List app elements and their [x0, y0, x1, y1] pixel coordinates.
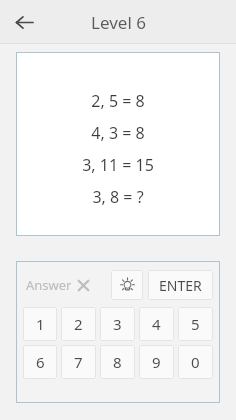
button[interactable]: Back: [8, 6, 40, 38]
button[interactable]: 2: [61, 307, 96, 341]
button[interactable]: Answer: [23, 270, 107, 300]
staticText: 3, 8 = ?: [92, 186, 144, 208]
staticText: 4, 3 = 8: [91, 122, 145, 144]
button[interactable]: Hint: [111, 270, 143, 300]
staticText: 9: [152, 352, 161, 372]
button[interactable]: 3: [100, 307, 135, 341]
staticText: 3, 11 = 15: [82, 154, 154, 176]
button[interactable]: 1: [23, 307, 57, 341]
staticText: 2: [74, 314, 83, 334]
button[interactable]: ENTER: [148, 270, 213, 300]
staticText: 5: [191, 314, 200, 334]
staticText: 1: [36, 314, 45, 334]
staticText: 8: [113, 352, 122, 372]
staticText: 0: [191, 352, 200, 372]
staticText: 3: [113, 314, 122, 334]
button[interactable]: 8: [100, 345, 135, 379]
staticText: 6: [36, 352, 45, 372]
staticText: ENTER: [159, 276, 202, 295]
staticText: 7: [74, 352, 83, 372]
staticText: Answer: [26, 276, 72, 294]
button[interactable]: 7: [61, 345, 96, 379]
button[interactable]: 9: [139, 345, 174, 379]
staticText: Level 6: [91, 11, 146, 34]
button[interactable]: 5: [178, 307, 213, 341]
button[interactable]: 4: [139, 307, 174, 341]
staticText: 4: [152, 314, 161, 334]
button[interactable]: 6: [23, 345, 57, 379]
staticText: 2, 5 = 8: [91, 90, 145, 112]
button[interactable]: 0: [178, 345, 213, 379]
